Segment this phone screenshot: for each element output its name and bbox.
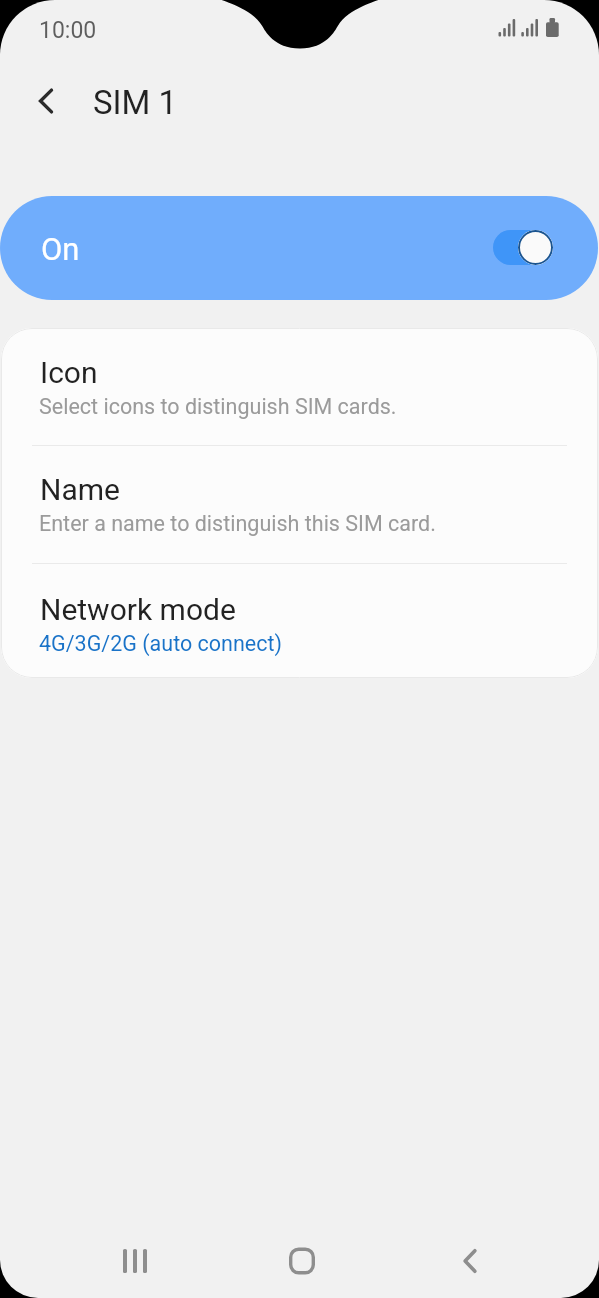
staticText: Select icons to distinguish SIM cards.	[39, 394, 397, 419]
staticText: Icon	[40, 355, 98, 390]
button[interactable]: Name	[1, 446, 598, 563]
staticText: 10:00	[39, 17, 97, 44]
button[interactable]: Recent apps	[104, 1230, 166, 1292]
button[interactable]: Navigate up	[22, 77, 70, 125]
button[interactable]: Back	[439, 1230, 501, 1292]
button[interactable]: Network mode	[1, 564, 598, 678]
button[interactable]: On	[0, 196, 598, 300]
button[interactable]: Home	[271, 1230, 333, 1292]
staticText: SIM 1	[93, 83, 178, 122]
staticText: 4G/3G/2G (auto connect)	[39, 631, 283, 656]
button[interactable]: Icon	[1, 328, 598, 445]
staticText: Network mode	[40, 592, 236, 627]
staticText: Enter a name to distinguish this SIM car…	[39, 511, 436, 536]
staticText: On	[41, 231, 80, 267]
staticText: Name	[40, 472, 120, 507]
